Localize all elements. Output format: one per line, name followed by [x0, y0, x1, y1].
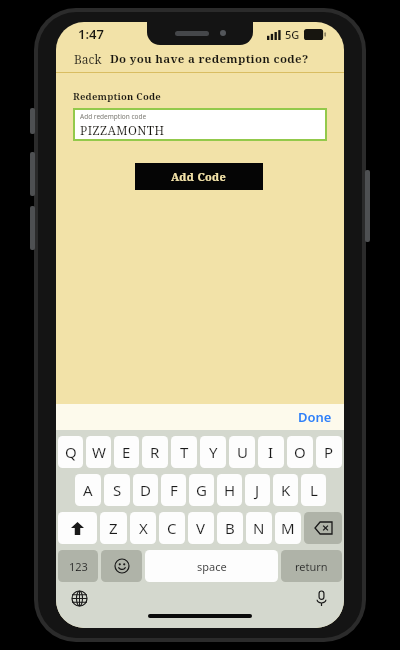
staticText: V: [196, 518, 206, 538]
staticText: T: [180, 442, 189, 462]
button[interactable]: Back: [56, 47, 120, 71]
staticText: 123: [69, 559, 88, 574]
button[interactable]: B: [217, 512, 243, 544]
staticText: A: [83, 480, 93, 500]
button[interactable]: J: [245, 474, 270, 506]
button[interactable]: I: [258, 436, 284, 468]
staticText: C: [167, 518, 177, 538]
button[interactable]: T: [171, 436, 197, 468]
staticText: X: [139, 518, 148, 538]
staticText: Z: [109, 518, 118, 538]
button[interactable]: P: [316, 436, 342, 468]
staticText: return: [295, 559, 328, 574]
staticText: F: [170, 480, 178, 500]
button[interactable]: H: [217, 474, 242, 506]
staticText: 5G: [285, 27, 300, 42]
button[interactable]: A: [75, 474, 101, 506]
button[interactable]: X: [130, 512, 156, 544]
staticText: Add redemption code: [80, 112, 147, 121]
button[interactable]: Q: [58, 436, 83, 468]
button[interactable]: Voice input: [308, 585, 334, 611]
button[interactable]: C: [159, 512, 185, 544]
staticText: H: [224, 480, 236, 500]
staticText: N: [253, 518, 265, 538]
button[interactable]: M: [275, 512, 301, 544]
button[interactable]: Add Code: [135, 163, 263, 190]
staticText: G: [196, 480, 207, 500]
staticText: I: [268, 442, 274, 462]
button[interactable]: Done: [286, 404, 344, 430]
staticText: O: [294, 442, 306, 462]
staticText: L: [310, 480, 318, 500]
button[interactable]: 123: [58, 550, 98, 582]
button[interactable]: D: [133, 474, 158, 506]
staticText: M: [281, 518, 295, 538]
button[interactable]: Shift: [58, 512, 97, 544]
button[interactable]: V: [188, 512, 214, 544]
staticText: S: [113, 480, 122, 500]
button[interactable]: S: [104, 474, 130, 506]
button[interactable]: W: [86, 436, 111, 468]
staticText: D: [140, 480, 151, 500]
staticText: space: [197, 559, 227, 574]
staticText: 1:47: [78, 25, 104, 43]
staticText: P: [324, 442, 334, 462]
staticText: U: [237, 442, 248, 462]
staticText: Redemption Code: [73, 90, 161, 103]
staticText: Y: [209, 442, 218, 462]
button[interactable]: E: [114, 436, 139, 468]
button[interactable]: Change keyboard language: [66, 585, 92, 611]
staticText: Add Code: [171, 169, 227, 184]
staticText: PIZZAMONTH: [80, 122, 165, 138]
staticText: K: [281, 480, 291, 500]
button[interactable]: O: [287, 436, 313, 468]
button[interactable]: Z: [100, 512, 127, 544]
staticText: Do you have a redemption code?: [110, 51, 309, 67]
button[interactable]: L: [301, 474, 326, 506]
button[interactable]: space: [145, 550, 278, 582]
button[interactable]: F: [161, 474, 186, 506]
staticText: B: [225, 518, 235, 538]
staticText: Q: [65, 442, 77, 462]
button[interactable]: K: [273, 474, 298, 506]
button[interactable]: Backspace: [304, 512, 342, 544]
button[interactable]: Add redemption code: [73, 108, 327, 141]
button[interactable]: Y: [200, 436, 226, 468]
button[interactable]: U: [229, 436, 255, 468]
staticText: J: [255, 480, 260, 500]
button[interactable]: return: [281, 550, 342, 582]
staticText: Back: [74, 51, 102, 67]
button[interactable]: G: [189, 474, 214, 506]
staticText: Done: [298, 408, 332, 426]
button[interactable]: Emoji: [101, 550, 142, 582]
staticText: R: [150, 442, 160, 462]
button[interactable]: N: [246, 512, 272, 544]
button[interactable]: R: [142, 436, 168, 468]
staticText: W: [92, 442, 106, 462]
staticText: E: [122, 442, 131, 462]
